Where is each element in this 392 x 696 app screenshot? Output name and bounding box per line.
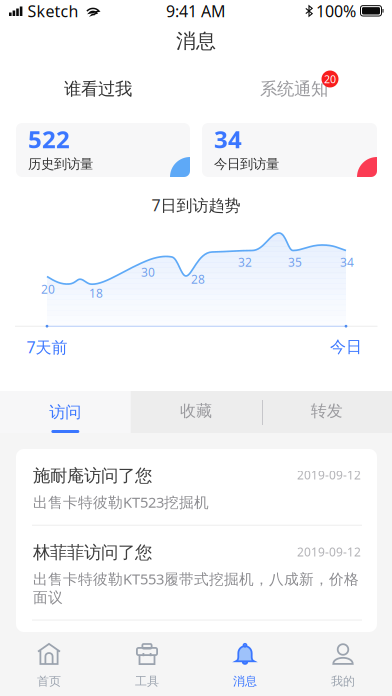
staticText: 谁看过我 xyxy=(64,78,132,100)
staticText: 消息 xyxy=(233,674,257,689)
button[interactable]: 收藏 xyxy=(131,391,261,433)
button[interactable]: 系统通知 xyxy=(196,70,392,108)
button[interactable]: 7天前 xyxy=(17,336,77,358)
staticText: 28 xyxy=(191,271,205,287)
staticText: 我的 xyxy=(331,674,355,689)
button[interactable]: 工具 xyxy=(98,634,196,696)
button[interactable]: 首页 xyxy=(0,634,98,696)
staticText: 施耐庵访问了您 xyxy=(33,465,152,486)
staticText: 2019-09-12 xyxy=(297,544,361,560)
staticText: 访问 xyxy=(49,402,81,422)
staticText: 7天前 xyxy=(26,336,67,358)
staticText: 出售卡特彼勒KT523挖掘机 xyxy=(33,492,209,512)
button[interactable]: 谁看过我 xyxy=(0,70,196,108)
staticText: 消息 xyxy=(176,29,216,53)
button[interactable]: 林菲菲访问了您 xyxy=(16,526,377,620)
staticText: 今日到访量 xyxy=(214,156,279,172)
staticText: 522 xyxy=(28,123,70,155)
staticText: 出售卡特彼勒KT553履带式挖掘机，八成新，价格面议 xyxy=(33,569,359,607)
staticText: 20 xyxy=(324,72,336,86)
button[interactable]: 消息 xyxy=(196,634,294,696)
staticText: 9:41 AM xyxy=(166,0,226,22)
staticText: 34 xyxy=(214,123,242,155)
staticText: 18 xyxy=(89,285,103,301)
staticText: 35 xyxy=(288,254,302,270)
staticText: 首页 xyxy=(37,674,61,689)
button[interactable]: 今日 xyxy=(323,336,369,358)
button[interactable]: 转发 xyxy=(261,391,392,433)
staticText: 工具 xyxy=(135,674,159,689)
staticText: 100% xyxy=(316,0,356,22)
staticText: Sketch xyxy=(27,0,78,22)
button[interactable]: 施耐庵访问了您 xyxy=(16,449,377,525)
staticText: 2019-09-12 xyxy=(297,467,361,483)
staticText: 收藏 xyxy=(180,401,212,421)
staticText: 32 xyxy=(238,254,252,270)
staticText: 系统通知 xyxy=(260,78,328,100)
button[interactable]: 访问 xyxy=(0,391,131,433)
staticText: 今日 xyxy=(330,337,362,357)
button[interactable]: 我的 xyxy=(294,634,392,696)
staticText: 7日到访趋势 xyxy=(151,194,240,216)
staticText: 转发 xyxy=(311,401,343,421)
staticText: 34 xyxy=(340,254,354,270)
staticText: 林菲菲访问了您 xyxy=(33,542,152,563)
staticText: 20 xyxy=(41,281,55,297)
staticText: 30 xyxy=(141,264,155,280)
staticText: 历史到访量 xyxy=(28,156,93,172)
